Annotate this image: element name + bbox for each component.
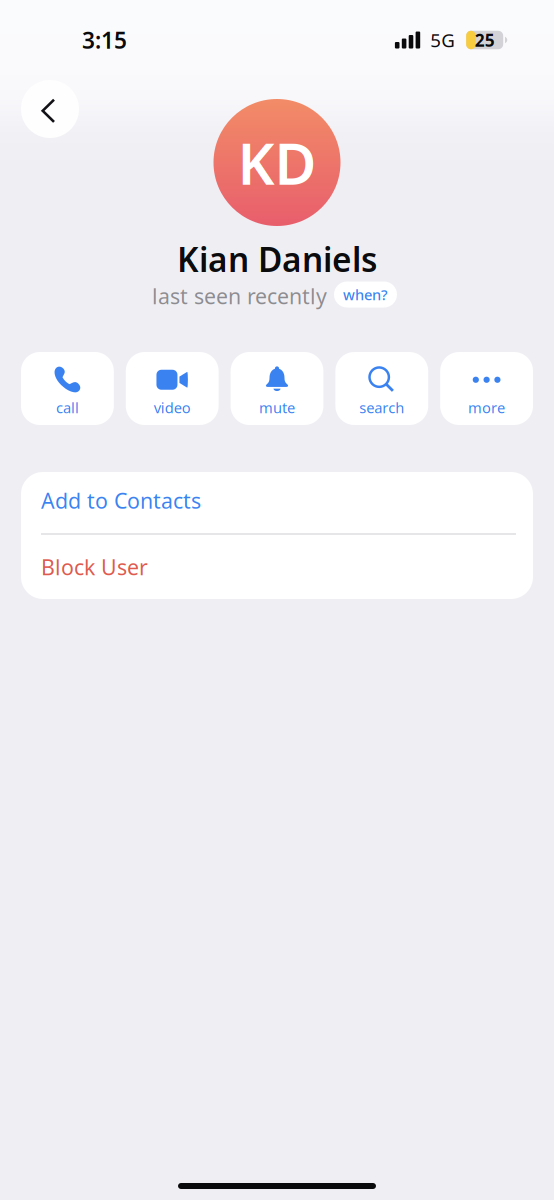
button[interactable]: more xyxy=(440,352,533,425)
button[interactable]: video xyxy=(126,352,219,425)
staticText: Block User xyxy=(41,553,148,581)
staticText: mute xyxy=(259,398,295,417)
staticText: last seen recently xyxy=(152,282,327,310)
button[interactable]: call xyxy=(21,352,114,425)
staticText: 3:15 xyxy=(82,25,127,55)
staticText: call xyxy=(56,398,79,417)
staticText: more xyxy=(468,398,505,417)
staticText: video xyxy=(154,398,191,417)
button[interactable]: Add to Contacts xyxy=(21,472,533,533)
staticText: 5G xyxy=(430,28,455,52)
staticText: search xyxy=(359,398,404,417)
button[interactable]: mute xyxy=(231,352,323,425)
button[interactable]: when? xyxy=(334,281,397,307)
button[interactable]: Back xyxy=(21,80,79,138)
staticText: Add to Contacts xyxy=(41,486,201,515)
staticText: 25 xyxy=(475,28,495,51)
button[interactable]: Block User xyxy=(21,535,533,599)
staticText: Kian Daniels xyxy=(177,237,377,281)
staticText: when? xyxy=(343,285,388,304)
staticText: KD xyxy=(237,124,316,200)
button[interactable]: search xyxy=(335,352,428,425)
